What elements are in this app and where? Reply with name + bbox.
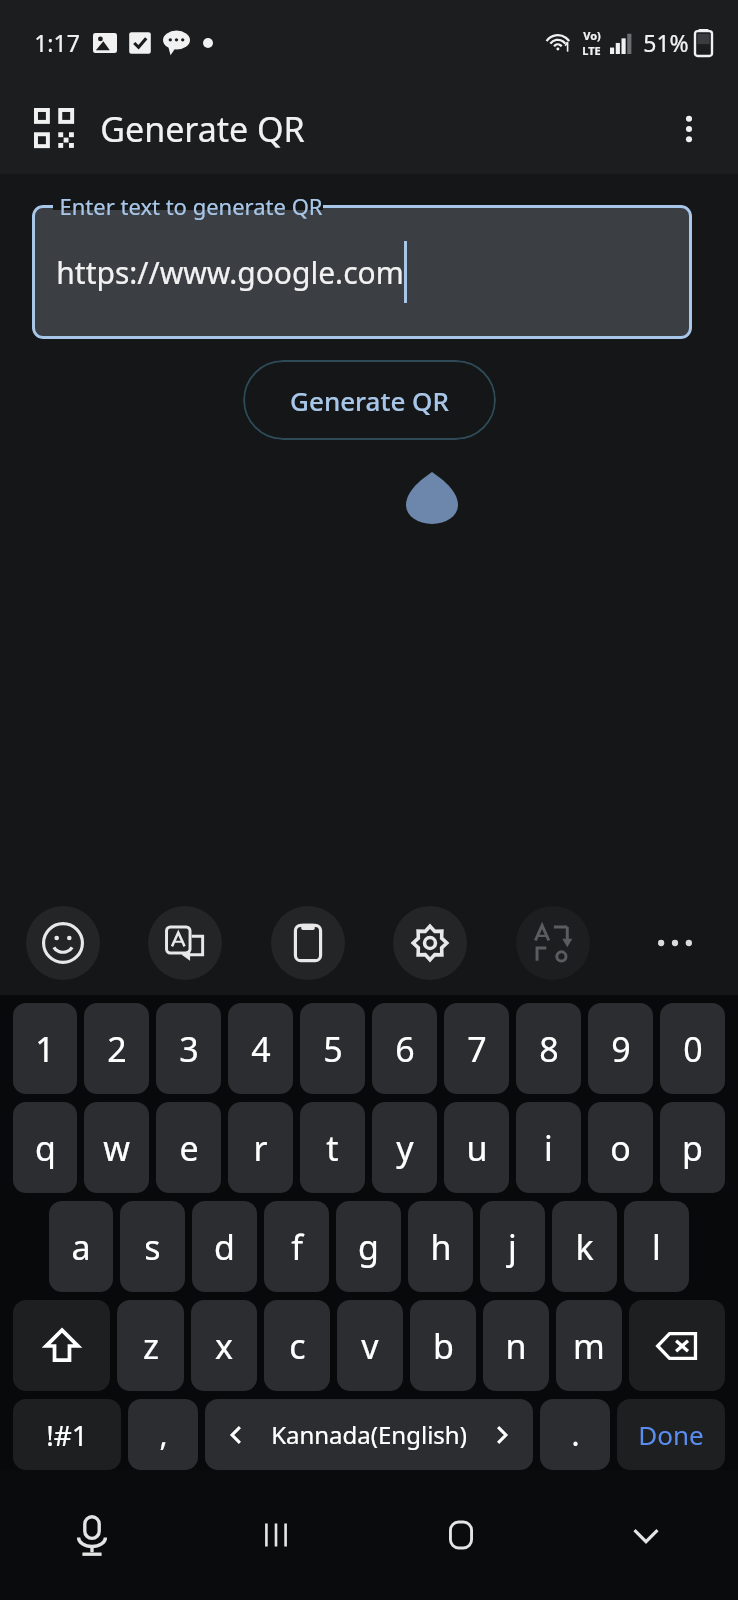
button[interactable]: 1 xyxy=(13,1003,77,1094)
staticText: Enter text to generate QR xyxy=(59,191,323,221)
staticText: 8 xyxy=(539,1026,559,1072)
button[interactable]: 9 xyxy=(588,1003,653,1094)
staticText: z xyxy=(143,1323,159,1369)
button[interactable]: k xyxy=(552,1201,617,1292)
button[interactable]: h xyxy=(408,1201,473,1292)
button[interactable]: 0 xyxy=(660,1003,725,1094)
button[interactable]: , xyxy=(128,1399,198,1470)
staticText: !#1 xyxy=(46,1416,88,1454)
button[interactable]: z xyxy=(117,1300,184,1391)
staticText: LTE xyxy=(582,43,601,58)
button[interactable]: q xyxy=(13,1102,77,1193)
button[interactable]: Settings xyxy=(393,906,467,980)
button[interactable]: l xyxy=(624,1201,689,1292)
staticText: i xyxy=(544,1125,553,1171)
button[interactable]: Backspace xyxy=(629,1300,725,1391)
staticText: Kannada(English) xyxy=(271,1418,467,1451)
staticText: a xyxy=(71,1224,91,1270)
staticText: . xyxy=(571,1414,580,1455)
button[interactable]: 2 xyxy=(84,1003,149,1094)
button[interactable]: d xyxy=(192,1201,257,1292)
button[interactable]: p xyxy=(660,1102,725,1193)
button[interactable]: Hide keyboard xyxy=(553,1470,738,1600)
button[interactable]: w xyxy=(84,1102,149,1193)
button[interactable]: More xyxy=(638,906,712,980)
staticText: b xyxy=(433,1323,454,1369)
button[interactable]: Kannada(English) xyxy=(205,1399,533,1470)
button[interactable]: Shift xyxy=(13,1300,110,1391)
button[interactable]: Clipboard xyxy=(271,906,345,980)
button[interactable]: 8 xyxy=(516,1003,581,1094)
button[interactable]: . xyxy=(540,1399,610,1470)
button[interactable]: f xyxy=(264,1201,329,1292)
button[interactable]: 4 xyxy=(228,1003,293,1094)
staticText: Generate QR xyxy=(100,106,305,152)
button[interactable]: x xyxy=(191,1300,257,1391)
staticText: , xyxy=(159,1414,168,1455)
button[interactable]: o xyxy=(588,1102,653,1193)
button[interactable]: r xyxy=(228,1102,293,1193)
staticText: Done xyxy=(638,1417,704,1452)
staticText: 3 xyxy=(179,1026,199,1072)
button[interactable] xyxy=(32,205,692,339)
staticText: f xyxy=(291,1224,303,1270)
button[interactable]: n xyxy=(483,1300,549,1391)
button[interactable]: y xyxy=(372,1102,437,1193)
button[interactable]: Text mode xyxy=(516,906,590,980)
staticText: j xyxy=(508,1224,517,1270)
staticText: h xyxy=(430,1224,452,1270)
button[interactable]: Emoji xyxy=(26,906,100,980)
staticText: w xyxy=(103,1125,130,1171)
staticText: 6 xyxy=(395,1026,415,1072)
staticText: t xyxy=(326,1125,339,1171)
button[interactable]: e xyxy=(156,1102,221,1193)
button[interactable]: b xyxy=(410,1300,476,1391)
button[interactable]: Done xyxy=(617,1399,725,1470)
button[interactable]: Home xyxy=(368,1470,553,1600)
button[interactable]: v xyxy=(337,1300,403,1391)
staticText: 1:17 xyxy=(34,27,80,58)
staticText: Vo) xyxy=(583,28,601,43)
staticText: n xyxy=(505,1323,527,1369)
staticText: l xyxy=(652,1224,661,1270)
staticText: 4 xyxy=(251,1026,271,1072)
staticText: u xyxy=(466,1125,488,1171)
button[interactable]: Voice input xyxy=(0,1470,184,1600)
staticText: d xyxy=(214,1224,235,1270)
button[interactable]: i xyxy=(516,1102,581,1193)
staticText: 2 xyxy=(107,1026,127,1072)
button[interactable]: m xyxy=(556,1300,622,1391)
staticText: m xyxy=(573,1323,605,1369)
button[interactable]: g xyxy=(336,1201,401,1292)
button[interactable]: More options xyxy=(654,94,724,164)
staticText: 9 xyxy=(611,1026,631,1072)
button[interactable]: Generate QR xyxy=(243,360,496,440)
staticText: 1 xyxy=(35,1026,55,1072)
staticText: v xyxy=(361,1323,379,1369)
staticText: s xyxy=(144,1224,161,1270)
button[interactable]: a xyxy=(49,1201,113,1292)
button[interactable]: !#1 xyxy=(13,1399,121,1470)
button[interactable]: 3 xyxy=(156,1003,221,1094)
staticText: e xyxy=(179,1125,199,1171)
button[interactable]: 6 xyxy=(372,1003,437,1094)
staticText: Generate QR xyxy=(290,383,449,418)
staticText: r xyxy=(253,1125,268,1171)
staticText: https://www.google.com xyxy=(56,252,404,293)
staticText: c xyxy=(289,1323,306,1369)
button[interactable]: 5 xyxy=(300,1003,365,1094)
staticText: 0 xyxy=(683,1026,703,1072)
staticText: x xyxy=(215,1323,233,1369)
button[interactable]: Recents xyxy=(184,1470,368,1600)
staticText: q xyxy=(35,1125,56,1171)
staticText: k xyxy=(575,1224,594,1270)
button[interactable]: s xyxy=(120,1201,185,1292)
button[interactable]: 7 xyxy=(444,1003,509,1094)
staticText: 51% xyxy=(643,27,689,58)
button[interactable]: u xyxy=(444,1102,509,1193)
button[interactable]: t xyxy=(300,1102,365,1193)
staticText: y xyxy=(396,1125,414,1171)
button[interactable]: j xyxy=(480,1201,545,1292)
button[interactable]: Translate xyxy=(148,906,222,980)
button[interactable]: c xyxy=(264,1300,330,1391)
